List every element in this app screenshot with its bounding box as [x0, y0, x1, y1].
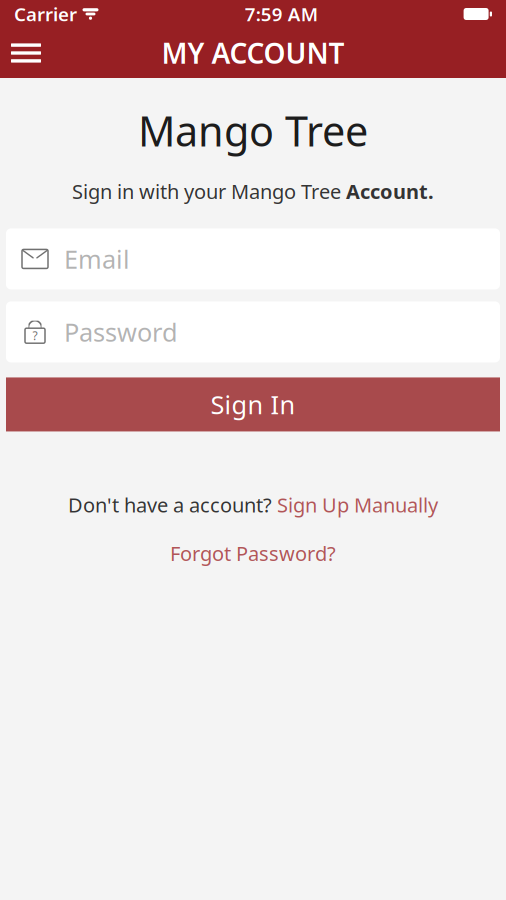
- staticText: Forgot Password?: [170, 540, 336, 567]
- staticText: Sign Up Manually: [277, 491, 438, 518]
- staticText: MY ACCOUNT: [161, 34, 344, 72]
- staticText: Sign in with your Mango Tree: [72, 178, 346, 204]
- staticText: Don't have a account?: [68, 491, 277, 518]
- staticText: ?: [32, 328, 37, 344]
- button[interactable]: Sign Up Manually: [277, 491, 438, 518]
- staticText: Mango Tree: [138, 103, 368, 158]
- staticText: Password: [64, 315, 178, 349]
- staticText: Account.: [346, 178, 434, 204]
- staticText: Email: [64, 242, 130, 276]
- button[interactable]: Email: [6, 228, 500, 289]
- staticText: 7:59 AM: [245, 2, 318, 26]
- staticText: Carrier: [14, 2, 77, 26]
- staticText: Sign In: [210, 388, 295, 421]
- button[interactable]: ?: [6, 301, 500, 362]
- button[interactable]: Sign In: [6, 377, 500, 431]
- button[interactable]: Forgot Password?: [170, 540, 336, 567]
- button[interactable]: Menu: [0, 30, 52, 76]
